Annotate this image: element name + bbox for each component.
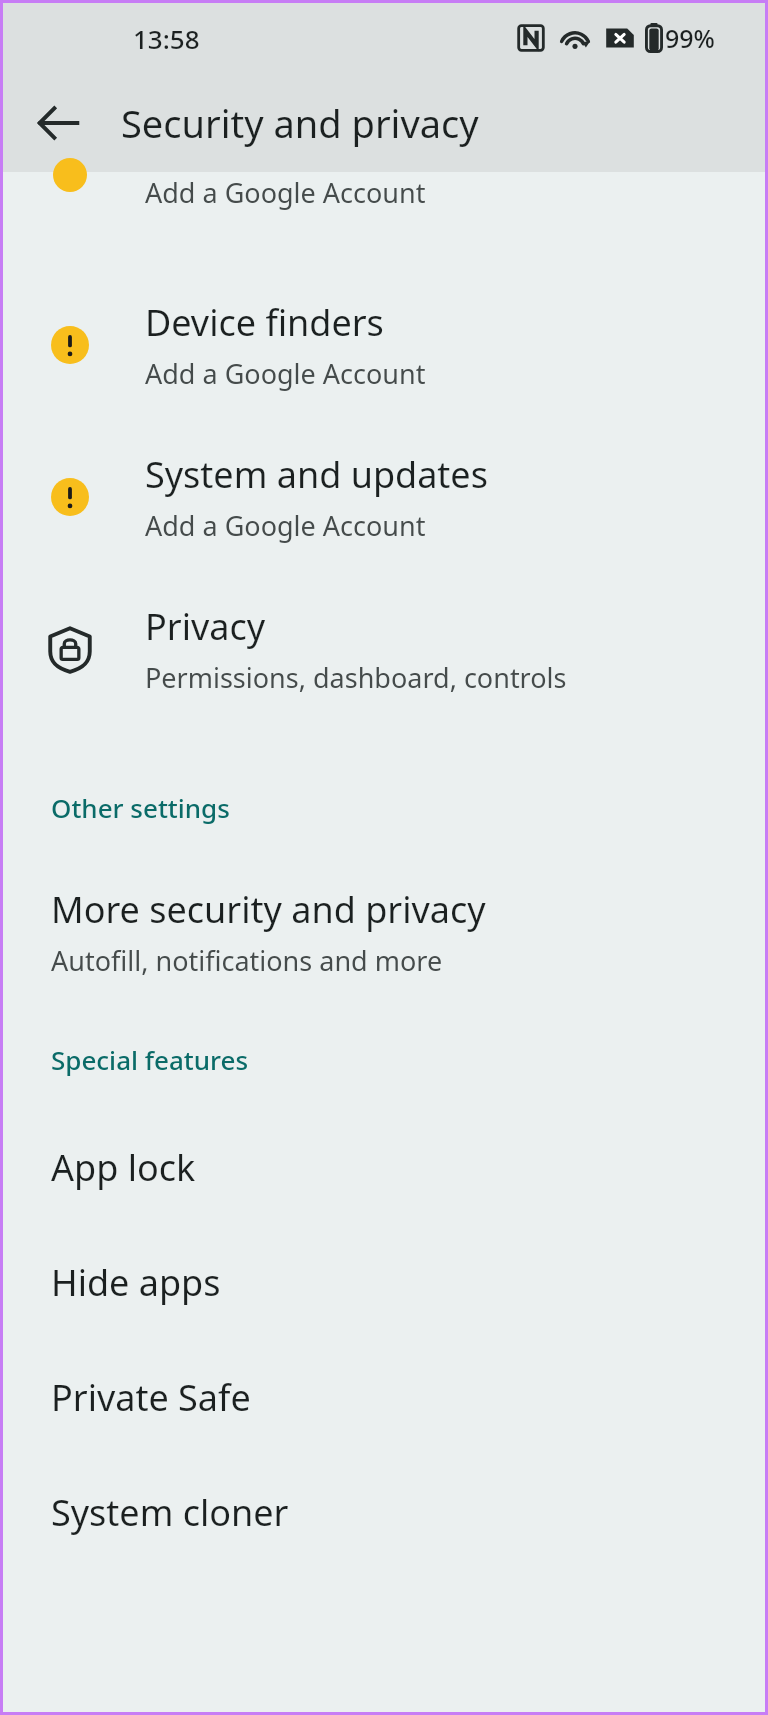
button[interactable]: More security and privacy — [3, 862, 765, 1002]
staticText: Security and privacy — [121, 97, 479, 149]
staticText: Permissions, dashboard, controls — [145, 659, 567, 696]
staticText: Privacy — [145, 602, 266, 651]
staticText: 99% — [665, 21, 715, 55]
staticText: System and updates — [145, 450, 488, 499]
button[interactable]: Private Safe — [3, 1342, 765, 1452]
staticText: System cloner — [51, 1488, 289, 1537]
staticText: Add a Google Account — [145, 174, 426, 211]
staticText: Add a Google Account — [145, 355, 426, 392]
staticText: Special features — [51, 1042, 249, 1077]
staticText: 13:58 — [133, 21, 200, 56]
button[interactable]: Hide apps — [3, 1227, 765, 1337]
staticText: Other settings — [51, 790, 230, 825]
staticText: More security and privacy — [51, 885, 486, 934]
button[interactable]: Add a Google Account — [3, 172, 765, 232]
button[interactable]: Device finders — [3, 275, 765, 415]
button[interactable]: System and updates — [3, 427, 765, 567]
button[interactable]: Privacy — [3, 579, 765, 719]
staticText: Private Safe — [51, 1373, 251, 1422]
button[interactable]: App lock — [3, 1112, 765, 1222]
staticText: App lock — [51, 1143, 196, 1192]
staticText: Hide apps — [51, 1258, 221, 1307]
staticText: Device finders — [145, 298, 384, 347]
button[interactable]: System cloner — [3, 1457, 765, 1567]
staticText: Add a Google Account — [145, 507, 426, 544]
button[interactable]: Back — [23, 88, 93, 158]
staticText: Autofill, notifications and more — [51, 942, 443, 979]
